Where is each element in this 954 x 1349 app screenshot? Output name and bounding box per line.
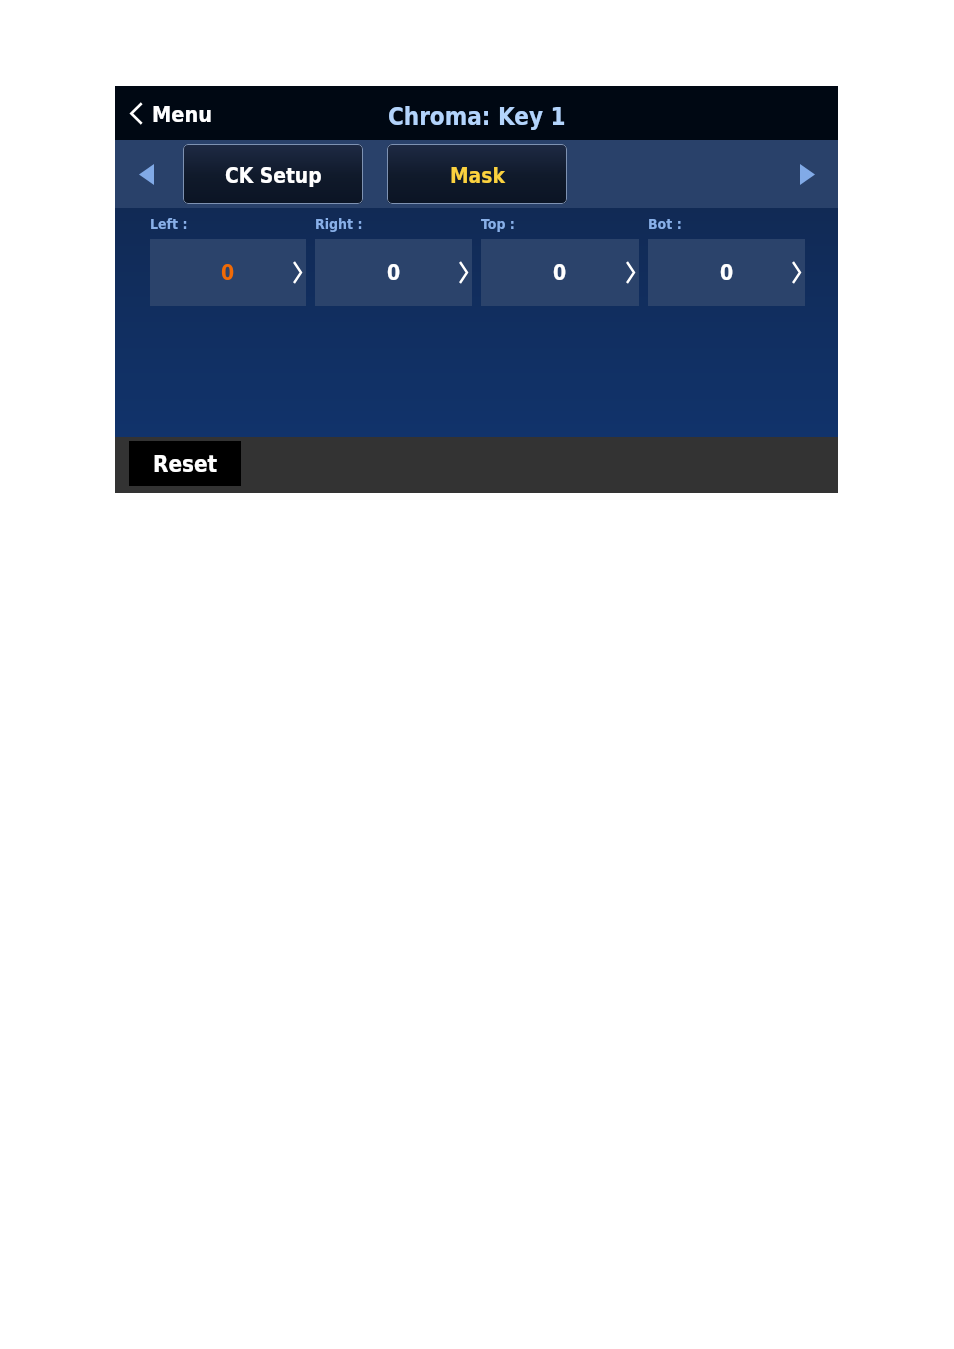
button[interactable]: Left : xyxy=(150,216,306,306)
staticText: Top : xyxy=(481,216,515,232)
staticText: Chroma: Key 1 xyxy=(388,103,566,131)
staticText: 0 xyxy=(720,261,734,285)
button[interactable]: 0 xyxy=(315,239,472,306)
staticText: 0 xyxy=(553,261,567,285)
button[interactable]: Reset xyxy=(129,441,241,486)
button[interactable]: Menu xyxy=(130,86,212,140)
staticText: Bot : xyxy=(648,216,682,232)
staticText: Mask xyxy=(450,164,505,188)
staticText: Menu xyxy=(152,102,212,127)
button[interactable]: Previous page xyxy=(125,149,167,199)
staticText: 0 xyxy=(387,261,401,285)
button[interactable]: Right : xyxy=(315,216,472,306)
staticText: Reset xyxy=(153,451,218,477)
button[interactable]: 0 xyxy=(150,239,306,306)
button[interactable]: 0 xyxy=(648,239,805,306)
button[interactable]: Next page xyxy=(786,149,828,199)
staticText: Left : xyxy=(150,216,188,232)
button[interactable]: Mask xyxy=(387,144,567,204)
staticText: 0 xyxy=(221,261,235,285)
button[interactable]: Top : xyxy=(481,216,639,306)
button[interactable]: CK Setup xyxy=(183,144,363,204)
staticText: Right : xyxy=(315,216,363,232)
button[interactable]: Bot : xyxy=(648,216,805,306)
staticText: CK Setup xyxy=(225,164,322,188)
button[interactable]: 0 xyxy=(481,239,639,306)
